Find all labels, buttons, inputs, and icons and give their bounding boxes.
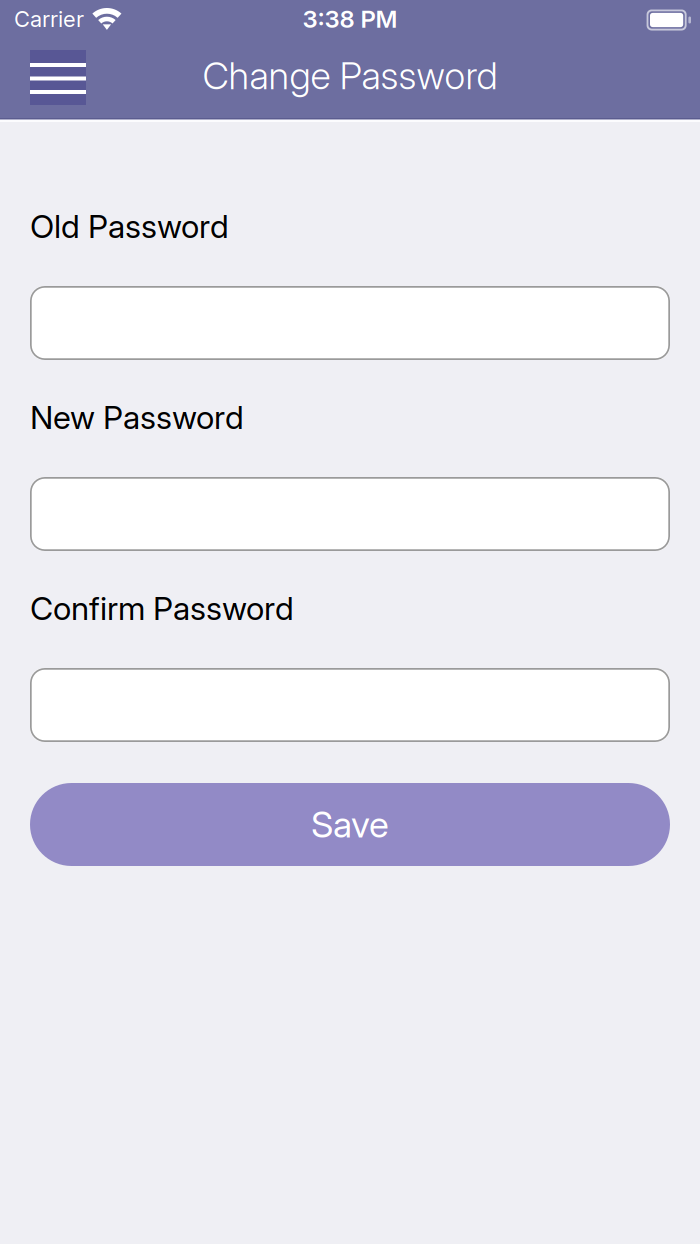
button[interactable]: Menu	[30, 50, 86, 105]
button[interactable]: Old Password	[30, 286, 670, 360]
button[interactable]: Save	[30, 783, 670, 866]
button[interactable]: New Password	[30, 477, 670, 551]
staticText: Confirm Password	[30, 589, 294, 628]
staticText: Save	[311, 803, 389, 846]
button[interactable]: Confirm Password	[30, 668, 670, 742]
staticText: Carrier	[14, 6, 84, 32]
staticText: Old Password	[30, 207, 229, 246]
staticText: Change Password	[202, 53, 497, 98]
staticText: 3:38 PM	[302, 4, 397, 33]
staticText: New Password	[30, 398, 244, 437]
